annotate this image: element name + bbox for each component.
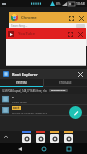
staticText: Chrome	[21, 15, 37, 20]
button[interactable]: acct	[0, 105, 87, 115]
staticText: Clear	[78, 30, 85, 34]
button[interactable]: Close YouTube	[76, 30, 84, 38]
button[interactable]: Back	[14, 143, 25, 154]
button[interactable]: ..	[0, 94, 87, 104]
button[interactable]: Close Root Explorer	[76, 70, 84, 78]
button[interactable]: MOUNT R/W	[51, 89, 66, 92]
button[interactable]: Calculator	[50, 131, 59, 143]
button[interactable]: Maximize YouTube	[66, 30, 74, 38]
button[interactable]: Home	[38, 143, 49, 154]
staticText: 8%	[56, 2, 61, 6]
button[interactable]: YouTube	[36, 131, 45, 143]
button[interactable]: New	[69, 106, 82, 119]
staticText: STORAGE	[59, 81, 72, 85]
button[interactable]: STORAGE	[44, 79, 87, 86]
staticText: acct	[13, 106, 20, 110]
staticText: Searching…	[11, 24, 28, 28]
staticText: 10:58	[76, 1, 85, 6]
staticText: Recent	[16, 30, 25, 34]
button[interactable]: SYSTEM	[0, 79, 43, 86]
staticText: ..	[12, 95, 14, 99]
staticText: MOUNT R/W	[51, 89, 66, 92]
button[interactable]: Maximize	[67, 14, 75, 22]
staticText: YouTube	[18, 31, 36, 36]
staticText: All	[11, 30, 14, 34]
staticText: /LSP/GB/Lspsd_148,7/1685 free, r/o	[2, 89, 47, 93]
button[interactable]: Close Chrome	[77, 14, 85, 22]
button[interactable]: Chrome	[22, 131, 31, 143]
button[interactable]: Root Explorer	[64, 131, 73, 143]
button[interactable]: Recents	[63, 143, 74, 154]
staticText: SYSTEM	[16, 81, 27, 85]
staticText: Root Explorer	[12, 72, 38, 77]
button[interactable]: Expand dock	[2, 133, 10, 141]
staticText: Parent folder	[12, 100, 27, 103]
staticText: 25-Nov-16 18:23:08 · drwxr-xr-x	[12, 111, 48, 114]
